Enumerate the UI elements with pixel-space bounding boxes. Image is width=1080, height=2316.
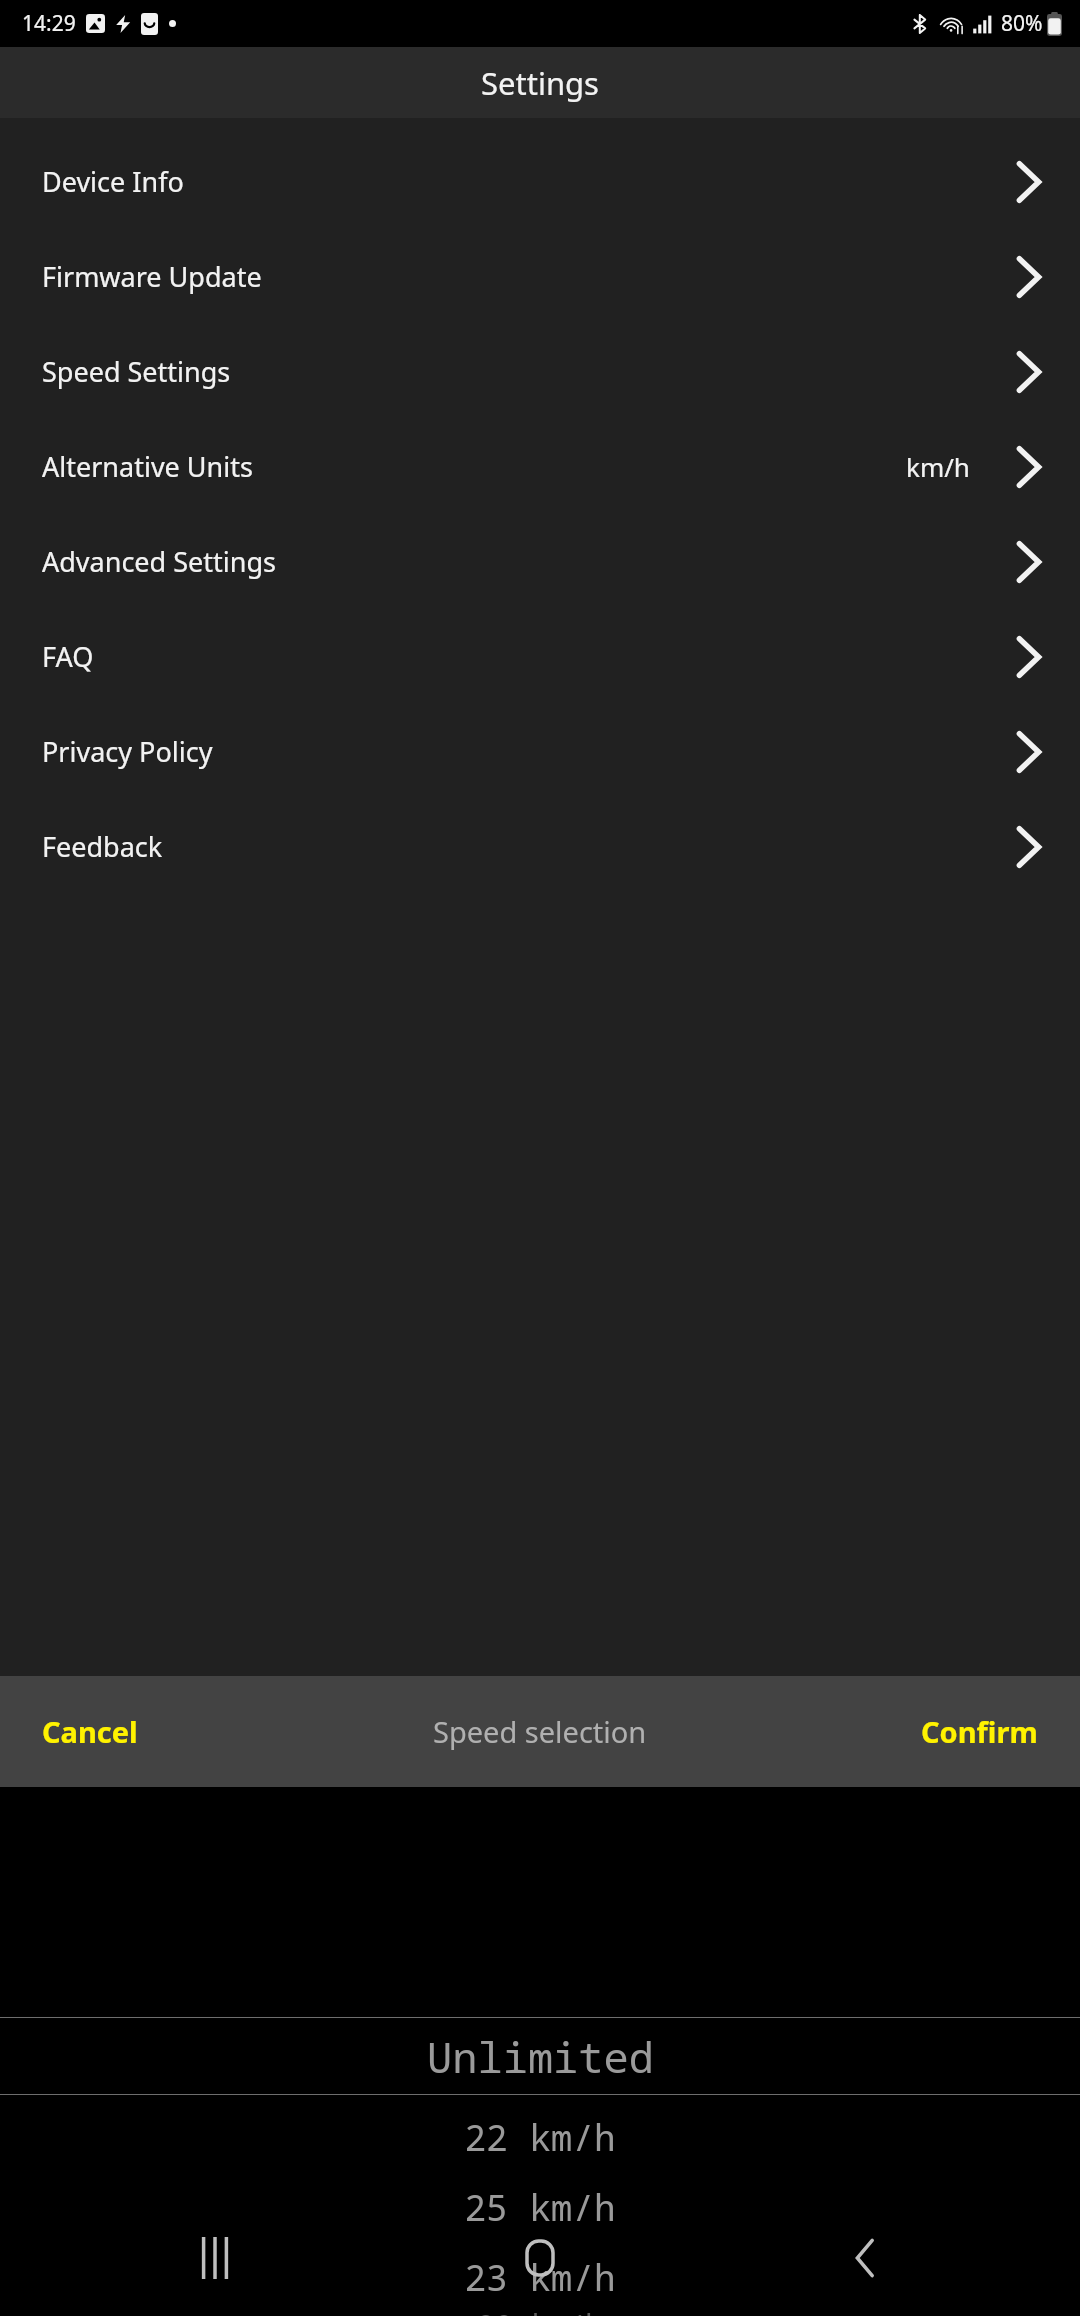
button[interactable]: Alternative Units bbox=[0, 419, 1080, 514]
staticText: 20 km/h bbox=[477, 2305, 603, 2316]
staticText: 80% bbox=[1001, 9, 1043, 38]
button[interactable]: Back bbox=[830, 2223, 900, 2293]
staticText: Unlimited bbox=[427, 2028, 654, 2085]
button[interactable]: 25 km/h bbox=[0, 2179, 1080, 2235]
button[interactable]: Speed Settings bbox=[0, 324, 1080, 419]
staticText: FAQ bbox=[42, 638, 94, 675]
button[interactable]: 23 km/h bbox=[0, 2249, 1080, 2305]
button[interactable]: Unlimited bbox=[0, 2018, 1080, 2094]
staticText: 25 km/h bbox=[464, 2183, 616, 2232]
staticText: 22 km/h bbox=[464, 2113, 616, 2162]
button[interactable]: Privacy Policy bbox=[0, 704, 1080, 799]
staticText: Firmware Update bbox=[42, 258, 262, 295]
button[interactable]: Cancel bbox=[0, 1688, 180, 1775]
button[interactable]: Device Info bbox=[0, 134, 1080, 229]
button[interactable]: 22 km/h bbox=[0, 2109, 1080, 2165]
button[interactable]: Recent apps bbox=[180, 2223, 250, 2293]
staticText: Device Info bbox=[42, 163, 184, 200]
staticText: Cancel bbox=[42, 1712, 138, 1751]
staticText: Feedback bbox=[42, 828, 163, 865]
staticText: Confirm bbox=[921, 1712, 1038, 1751]
staticText: Privacy Policy bbox=[42, 733, 213, 770]
staticText: Alternative Units bbox=[42, 448, 253, 485]
staticText: 23 km/h bbox=[464, 2253, 616, 2302]
button[interactable]: Feedback bbox=[0, 799, 1080, 894]
button[interactable]: Confirm bbox=[879, 1688, 1080, 1775]
staticText: Settings bbox=[481, 62, 599, 104]
staticText: Speed Settings bbox=[42, 353, 231, 390]
button[interactable]: Home bbox=[505, 2223, 575, 2293]
button[interactable]: Advanced Settings bbox=[0, 514, 1080, 609]
button[interactable]: FAQ bbox=[0, 609, 1080, 704]
button[interactable]: 20 km/h bbox=[0, 2305, 1080, 2316]
button[interactable]: Firmware Update bbox=[0, 229, 1080, 324]
staticText: 14:29 bbox=[22, 9, 76, 38]
staticText: Advanced Settings bbox=[42, 543, 276, 580]
staticText: Speed selection bbox=[433, 1712, 647, 1751]
staticText: km/h bbox=[906, 449, 970, 484]
